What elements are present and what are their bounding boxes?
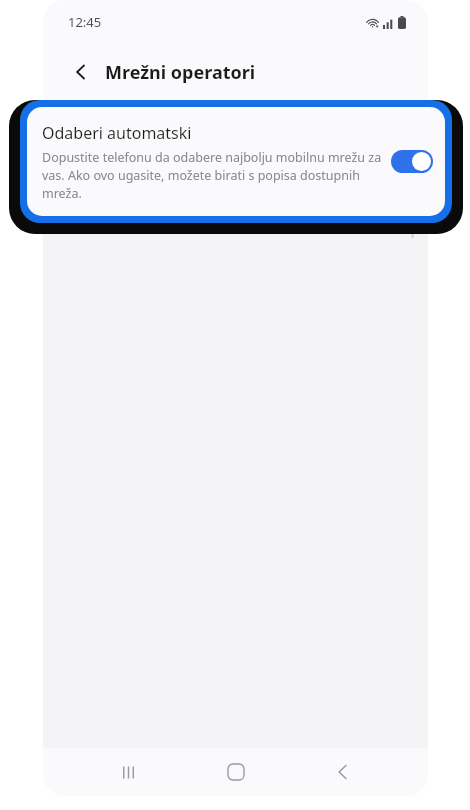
- staticText: Dopustite telefonu da odabere najbolju m…: [42, 149, 383, 202]
- button[interactable]: Recents: [105, 749, 151, 795]
- staticText: Mrežni operatori: [105, 60, 256, 85]
- staticText: Odaberi automatski: [42, 122, 192, 144]
- button[interactable]: Back: [67, 58, 95, 86]
- staticText: 12:45: [68, 13, 102, 31]
- button[interactable]: Odaberi automatski toggle: [391, 150, 433, 173]
- button[interactable]: Home: [213, 749, 259, 795]
- button[interactable]: Back: [320, 749, 366, 795]
- button[interactable]: Odaberi automatski: [27, 107, 445, 216]
